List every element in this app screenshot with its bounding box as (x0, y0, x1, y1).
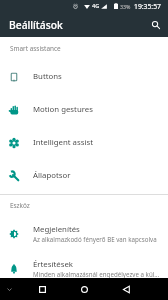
staticText: Állapotsor (33, 170, 71, 181)
button[interactable]: Home (74, 279, 94, 299)
staticText: Eszköz (10, 201, 30, 210)
button[interactable]: Search (146, 15, 166, 35)
staticText: Smart assistance (10, 44, 61, 53)
staticText: Buttons (33, 71, 62, 82)
button[interactable]: Motion gestures (0, 93, 168, 126)
staticText: Motion gestures (33, 104, 93, 115)
button[interactable]: Buttons (0, 60, 168, 93)
button[interactable]: Értesítések (0, 251, 168, 286)
staticText: Az alkalmazkodó fényerő BE van kapcsolva (33, 235, 157, 243)
staticText: 19:35:57 (134, 2, 161, 11)
staticText: 33% (120, 3, 131, 10)
staticText: Beállítások (9, 18, 63, 32)
button[interactable]: Megjelenítés (0, 216, 168, 251)
button[interactable]: Hide keyboard (2, 282, 16, 296)
button[interactable]: Recent apps (32, 279, 52, 299)
staticText: Minden alkalmazásnál engedélyezve a kül… (33, 270, 160, 278)
staticText: Megjelenítés (33, 224, 80, 235)
staticText: Értesítések (33, 259, 74, 270)
staticText: Intelligent assist (33, 137, 93, 148)
button[interactable]: Intelligent assist (0, 126, 168, 159)
staticText: 4G (92, 2, 100, 10)
button[interactable]: Back (116, 279, 136, 299)
button[interactable]: Állapotsor (0, 159, 168, 192)
